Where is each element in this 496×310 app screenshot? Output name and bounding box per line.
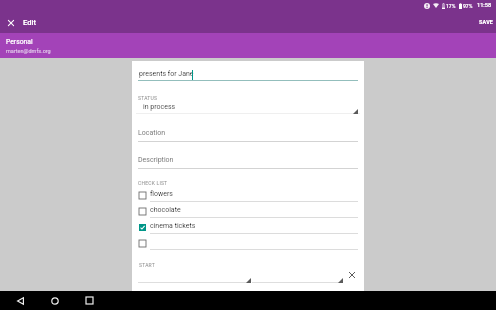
staticText: SAVE — [479, 19, 494, 25]
staticText: in process — [143, 103, 176, 111]
button[interactable]: Home — [45, 291, 64, 310]
button[interactable] — [139, 236, 358, 250]
staticText: 11:58 — [477, 2, 492, 9]
staticText: Edit — [23, 18, 36, 27]
button[interactable]: Back — [11, 291, 30, 310]
button[interactable]: chocolate — [139, 204, 358, 218]
button[interactable] — [138, 273, 251, 283]
staticText: presents for Jane — [139, 70, 194, 78]
staticText: flowers — [150, 190, 173, 198]
button[interactable]: presents for Jane — [138, 66, 358, 81]
button[interactable]: Location — [138, 129, 358, 142]
staticText: marten@dmfs.org — [6, 48, 51, 54]
button[interactable]: Recents — [80, 291, 99, 310]
staticText: 17% — [446, 3, 456, 9]
staticText: START — [139, 262, 155, 268]
staticText: Location — [138, 129, 166, 137]
button[interactable] — [252, 273, 343, 283]
staticText: chocolate — [150, 206, 181, 214]
button[interactable]: SAVE — [477, 15, 496, 29]
button[interactable]: cinema tickets — [139, 220, 358, 234]
button[interactable]: Clear start date — [345, 268, 358, 281]
button[interactable]: Personal — [0, 33, 496, 58]
staticText: CHECK LIST — [138, 180, 168, 186]
staticText: cinema tickets — [150, 222, 196, 230]
button[interactable]: flowers — [139, 188, 358, 202]
staticText: Description — [138, 156, 174, 164]
button[interactable]: in process — [136, 101, 360, 114]
staticText: 97% — [463, 3, 473, 9]
button[interactable]: Description — [138, 156, 358, 169]
staticText: STATUS — [138, 95, 158, 101]
button[interactable]: Close — [0, 12, 22, 33]
staticText: Personal — [6, 38, 33, 46]
